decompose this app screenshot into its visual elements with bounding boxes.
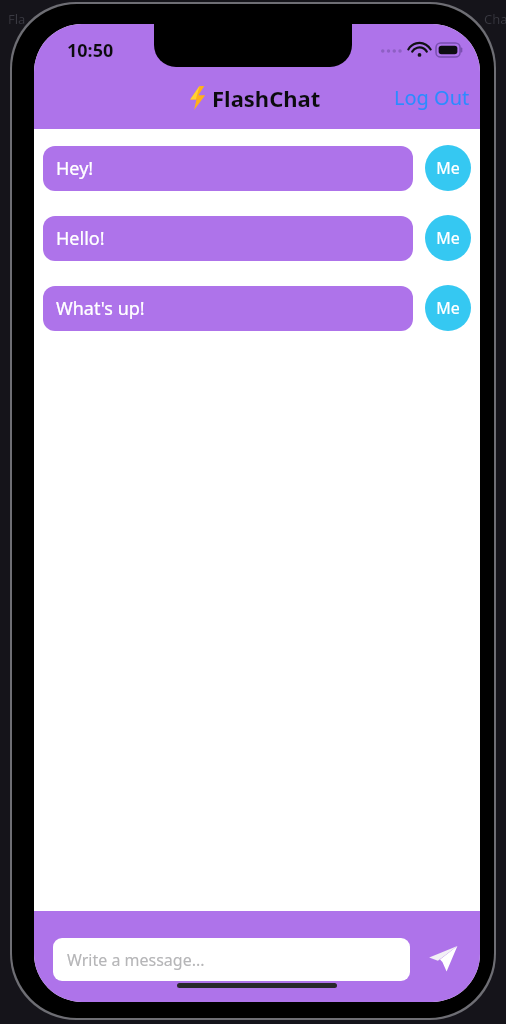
- staticText: FlashChat: [212, 83, 321, 113]
- staticText: Me: [436, 297, 460, 319]
- button[interactable]: Log Out: [384, 78, 480, 117]
- staticText: Me: [436, 227, 460, 249]
- button[interactable]: Write a message...: [53, 938, 410, 981]
- button[interactable]: Hey!: [43, 145, 471, 191]
- staticText: Log Out: [394, 84, 470, 111]
- staticText: Fla: [8, 10, 26, 28]
- staticText: Cha: [484, 10, 506, 28]
- button[interactable]: Hello!: [43, 215, 471, 261]
- staticText: 10:50: [67, 38, 114, 63]
- button[interactable]: Send message: [420, 936, 466, 982]
- staticText: What's up!: [56, 296, 145, 321]
- button[interactable]: FlashChat: [189, 83, 321, 113]
- staticText: Write a message...: [67, 949, 205, 971]
- staticText: Hey!: [56, 156, 94, 181]
- button[interactable]: What's up!: [43, 285, 471, 331]
- staticText: Me: [436, 157, 460, 179]
- staticText: Hello!: [56, 226, 105, 251]
